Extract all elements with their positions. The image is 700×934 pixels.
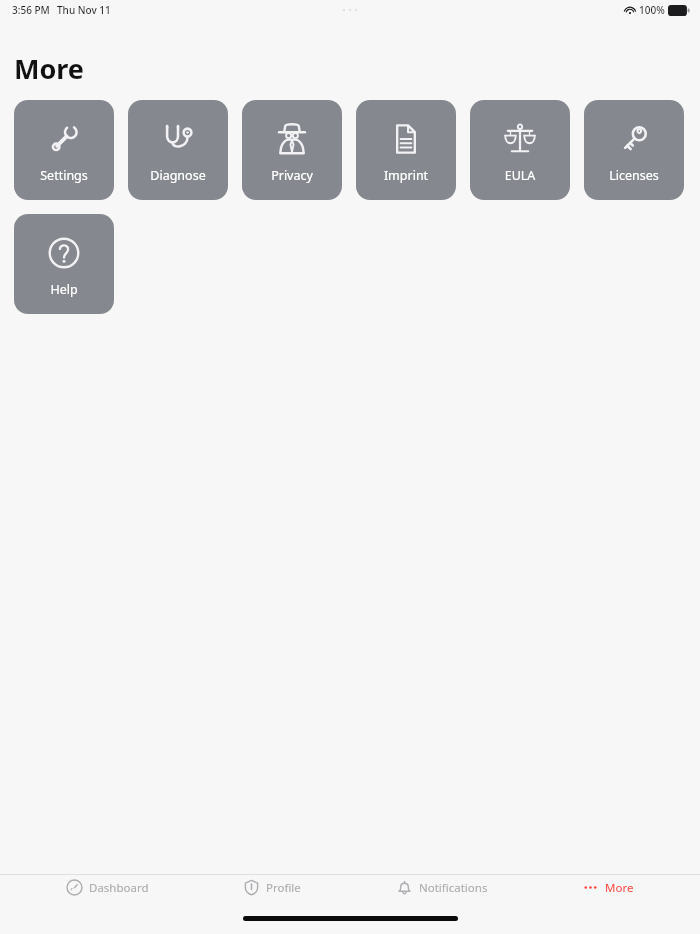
staticText: Help bbox=[14, 281, 114, 298]
button[interactable]: Notifications bbox=[390, 875, 494, 900]
staticText: Dashboard bbox=[89, 880, 149, 896]
button[interactable]: Settings bbox=[14, 100, 114, 200]
staticText: Diagnose bbox=[128, 167, 228, 184]
staticText: Notifications bbox=[419, 880, 488, 896]
button[interactable]: Privacy bbox=[242, 100, 342, 200]
button[interactable]: Dashboard bbox=[60, 875, 155, 900]
button[interactable]: EULA bbox=[470, 100, 570, 200]
staticText: More bbox=[605, 880, 634, 896]
staticText: EULA bbox=[470, 167, 570, 184]
staticText: 3:56 PM bbox=[12, 3, 50, 17]
staticText: Licenses bbox=[584, 167, 684, 184]
staticText: 100% bbox=[639, 3, 665, 17]
button[interactable]: Imprint bbox=[356, 100, 456, 200]
button[interactable]: Licenses bbox=[584, 100, 684, 200]
button[interactable]: Profile bbox=[237, 875, 307, 900]
button[interactable]: More bbox=[576, 875, 640, 900]
staticText: More bbox=[14, 50, 84, 87]
staticText: Privacy bbox=[242, 167, 342, 184]
staticText: Thu Nov 11 bbox=[57, 3, 111, 17]
staticText: Imprint bbox=[356, 167, 456, 184]
staticText: Profile bbox=[266, 880, 301, 896]
staticText: Settings bbox=[14, 167, 114, 184]
button[interactable]: Diagnose bbox=[128, 100, 228, 200]
button[interactable]: Help bbox=[14, 214, 114, 314]
